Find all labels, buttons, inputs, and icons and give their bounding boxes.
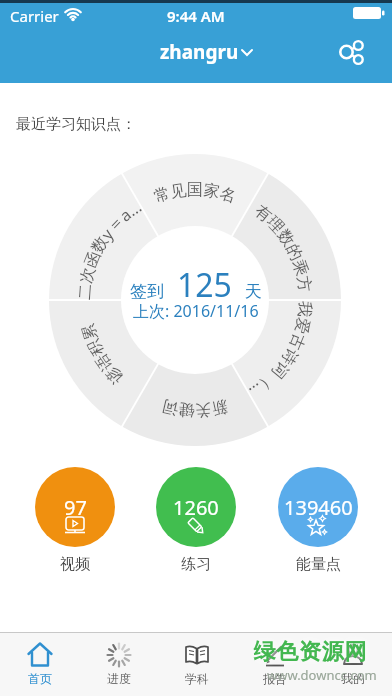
staticText: 上次: 2016/11/16 <box>133 300 259 322</box>
staticText: zhangru <box>160 39 239 65</box>
button[interactable]: 进度 <box>79 633 158 696</box>
staticText: www.downcc.com <box>267 666 377 684</box>
staticText: 97 <box>64 494 87 521</box>
staticText: 139460 <box>284 494 353 521</box>
button[interactable]: 报告 <box>236 633 314 696</box>
button[interactable] <box>334 39 364 69</box>
staticText: 首页 <box>28 671 52 686</box>
button[interactable]: 1260 <box>156 467 236 547</box>
button[interactable]: 首页 <box>0 633 79 696</box>
staticText: 签到 125 天 <box>130 263 262 307</box>
staticText: 1260 <box>173 494 219 521</box>
staticText: Carrier <box>10 6 59 26</box>
button[interactable]: 我的 <box>314 633 392 696</box>
button[interactable]: zhangru <box>160 39 255 65</box>
button[interactable]: 139460 <box>278 467 358 547</box>
button[interactable]: 97 <box>35 467 115 547</box>
staticText: 绿色资源网 <box>253 638 367 666</box>
staticText: 学科 <box>185 671 209 686</box>
button[interactable]: 学科 <box>158 633 236 696</box>
staticText: 练习 <box>181 555 211 574</box>
staticText: 能量点 <box>296 555 341 574</box>
staticText: 报告 <box>263 671 287 686</box>
staticText: 9:44 AM <box>167 6 225 26</box>
staticText: 视频 <box>60 555 90 574</box>
staticText: 我的 <box>341 671 365 686</box>
staticText: 进度 <box>107 671 131 686</box>
staticText: 最近学习知识点： <box>16 115 136 134</box>
